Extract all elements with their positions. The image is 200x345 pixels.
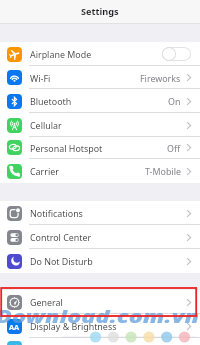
button[interactable]: AA [0,314,200,338]
staticText: Fireworks [140,72,181,84]
button[interactable]: Wi-Fi [0,66,200,89]
staticText: Bluetooth [30,95,72,107]
staticText: Settings [81,5,119,18]
button[interactable]: Notifications [0,201,200,225]
staticText: Off [167,142,181,154]
staticText: Do Not Disturb [30,255,93,267]
staticText: T-Mobile [145,165,181,177]
button[interactable]: Cellular [0,113,200,137]
button[interactable]: Airplane Mode [0,42,200,66]
button[interactable]: Do Not Disturb [0,249,200,273]
staticText: AA [9,322,20,332]
staticText: Airplane Mode [30,48,92,60]
button[interactable]: General [0,290,200,314]
staticText: Cellular [30,119,62,131]
button[interactable]: Carrier [0,159,200,183]
staticText: Display & Brightness [30,320,117,332]
button[interactable]: Wallpaper [0,337,200,345]
staticText: Wi-Fi [30,72,51,84]
staticText: Notifications [30,207,83,219]
staticText: On [168,95,181,107]
staticText: Download.com.vn [0,304,200,329]
other: Airplane Mode toggle [162,47,191,61]
staticText: General [30,296,63,308]
button[interactable]: Control Center [0,225,200,249]
button[interactable]: Personal Hotspot [0,136,200,159]
staticText: Personal Hotspot [30,142,103,154]
staticText: Carrier [30,165,59,177]
staticText: Control Center [30,231,92,243]
button[interactable]: Bluetooth [0,89,200,113]
